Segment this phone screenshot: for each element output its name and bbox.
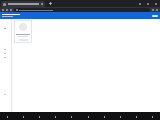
button[interactable]: Maximize xyxy=(146,2,150,6)
button[interactable]: Menu xyxy=(155,8,159,12)
button[interactable]: Reload xyxy=(9,8,13,12)
button[interactable]: Close window xyxy=(154,2,158,6)
button[interactable]: Minimize xyxy=(138,2,142,6)
button[interactable] xyxy=(2,14,20,17)
button[interactable]: Follow xyxy=(19,39,28,41)
button[interactable]: New tab xyxy=(48,1,53,6)
button[interactable]: Forward xyxy=(5,8,9,12)
button[interactable]: Close tab xyxy=(1,1,45,7)
button[interactable]: Back xyxy=(1,8,5,12)
button[interactable]: Follow xyxy=(14,20,32,43)
button[interactable]: Account xyxy=(152,15,158,17)
button[interactable]: Profile xyxy=(151,8,155,12)
button[interactable] xyxy=(14,8,150,12)
